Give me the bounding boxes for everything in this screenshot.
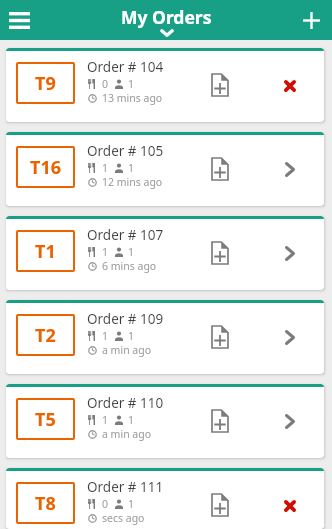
- staticText: Order # 111: [87, 478, 164, 496]
- staticText: 1: [128, 77, 135, 91]
- staticText: 1: [128, 329, 135, 343]
- staticText: a min ago: [102, 343, 152, 357]
- button[interactable]: Add note: [202, 319, 238, 355]
- staticText: 1: [102, 161, 109, 175]
- button[interactable]: T1: [6, 216, 324, 290]
- staticText: 0: [102, 77, 109, 91]
- staticText: secs ago: [102, 511, 145, 525]
- staticText: a min ago: [102, 427, 152, 441]
- staticText: Order # 107: [87, 226, 164, 244]
- button[interactable]: Add note: [202, 235, 238, 271]
- button[interactable]: T8: [6, 468, 324, 529]
- staticText: 13 mins ago: [102, 91, 163, 105]
- button[interactable]: Menu: [3, 4, 35, 36]
- button[interactable]: Open order: [272, 320, 308, 356]
- staticText: Order # 104: [87, 58, 164, 76]
- button[interactable]: Cancel order: [272, 488, 308, 524]
- staticText: T1: [35, 239, 56, 264]
- button[interactable]: Add note: [202, 67, 238, 103]
- button[interactable]: T5: [6, 384, 324, 458]
- staticText: 1: [102, 245, 109, 259]
- staticText: T2: [35, 323, 56, 348]
- button[interactable]: Open order: [272, 404, 308, 440]
- staticText: T5: [35, 407, 56, 432]
- staticText: 12 mins ago: [102, 175, 163, 189]
- button[interactable]: Add note: [202, 151, 238, 187]
- button[interactable]: Add note: [202, 487, 238, 523]
- button[interactable]: Open order: [272, 152, 308, 188]
- button[interactable]: T9: [6, 48, 324, 122]
- staticText: 1: [102, 413, 109, 427]
- staticText: 1: [128, 413, 135, 427]
- button[interactable]: Add note: [202, 403, 238, 439]
- button[interactable]: T16: [6, 132, 324, 206]
- button[interactable]: T2: [6, 300, 324, 374]
- staticText: 1: [128, 245, 135, 259]
- staticText: Order # 109: [87, 310, 164, 328]
- staticText: T8: [35, 491, 56, 516]
- staticText: Order # 110: [87, 394, 164, 412]
- staticText: 6 mins ago: [102, 259, 157, 273]
- staticText: 1: [102, 329, 109, 343]
- button[interactable]: Cancel order: [272, 68, 308, 104]
- button[interactable]: Open order: [272, 236, 308, 272]
- staticText: T16: [30, 155, 61, 180]
- staticText: My Orders: [121, 5, 212, 29]
- staticText: 1: [128, 497, 135, 511]
- staticText: Order # 105: [87, 142, 164, 160]
- button[interactable]: My Orders: [121, 0, 212, 37]
- staticText: 0: [102, 497, 109, 511]
- staticText: 1: [128, 161, 135, 175]
- button[interactable]: Add order: [295, 4, 327, 36]
- staticText: T9: [35, 71, 56, 96]
